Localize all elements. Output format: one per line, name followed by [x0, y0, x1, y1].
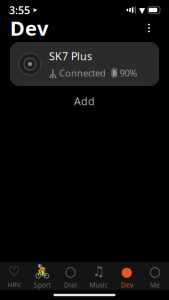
staticText: ○	[149, 264, 161, 279]
button[interactable]: More options	[139, 18, 159, 38]
staticText: Dev	[10, 15, 48, 41]
staticText: ᛦ	[49, 67, 56, 79]
staticText: ○	[64, 264, 76, 279]
staticText: ●	[121, 264, 133, 279]
button[interactable]: ○	[56, 263, 84, 290]
button[interactable]: Add	[0, 88, 169, 114]
staticText: Dev	[121, 280, 133, 289]
button[interactable]: SK7 Plus	[10, 42, 159, 86]
staticText: Music	[90, 280, 108, 289]
button[interactable]: ●	[113, 263, 141, 290]
staticText: Me	[150, 280, 160, 289]
staticText: HRV	[8, 280, 21, 289]
button[interactable]: ♫	[84, 263, 113, 290]
staticText: 90%	[119, 67, 137, 79]
staticText: ♫	[93, 264, 105, 279]
button[interactable]: ○	[141, 263, 169, 290]
staticText: Dial	[64, 280, 77, 289]
button[interactable]: ♡	[0, 263, 28, 290]
staticText: ➤	[32, 6, 38, 14]
staticText: ▾	[139, 3, 145, 17]
staticText: ♡	[8, 264, 20, 279]
staticText: 3:55	[9, 3, 30, 17]
staticText: 🚴	[34, 264, 51, 279]
button[interactable]: 🚴	[28, 263, 56, 290]
staticText: Connected	[59, 67, 106, 79]
staticText: Add	[74, 94, 95, 108]
staticText: Sport	[34, 280, 51, 289]
staticText: SK7 Plus	[49, 49, 92, 63]
